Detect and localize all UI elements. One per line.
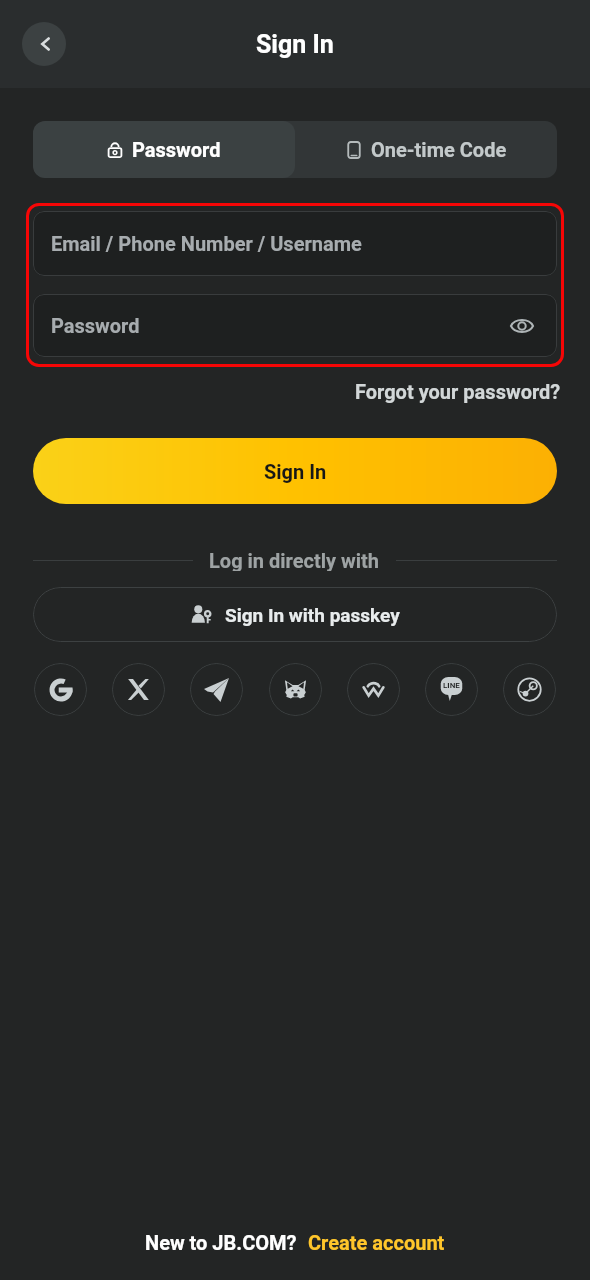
button[interactable]: Create account xyxy=(308,1231,445,1254)
button[interactable]: Forgot your password? xyxy=(353,376,563,407)
button[interactable]: Sign In with passkey xyxy=(33,587,557,642)
button[interactable]: Sign in with Telegram xyxy=(190,663,243,716)
button[interactable]: Password xyxy=(33,294,557,357)
button[interactable]: One-time Code xyxy=(295,121,557,178)
staticText: Create account xyxy=(308,1231,445,1254)
staticText: One-time Code xyxy=(371,138,507,161)
button[interactable]: Sign in with LINE xyxy=(425,663,478,716)
staticText: Sign In with passkey xyxy=(225,604,400,626)
staticText: New to JB.COM? xyxy=(145,1231,297,1254)
button[interactable]: Sign in with Google xyxy=(34,663,87,716)
staticText: Forgot your password? xyxy=(355,380,561,403)
button[interactable]: Sign in with X xyxy=(112,663,165,716)
staticText: Log in directly with xyxy=(209,549,380,571)
staticText: Sign In xyxy=(264,460,327,483)
staticText: Email / Phone Number / Username xyxy=(51,232,362,255)
staticText: Password xyxy=(51,314,140,337)
button[interactable]: Email / Phone Number / Username xyxy=(33,211,557,276)
button[interactable]: Password xyxy=(33,121,295,178)
button[interactable]: Sign in with Steam xyxy=(503,663,556,716)
staticText: LINE xyxy=(443,681,460,690)
staticText: Sign In xyxy=(256,30,334,59)
button[interactable]: Show password xyxy=(500,304,544,348)
button[interactable]: Sign in with WalletConnect xyxy=(347,663,400,716)
button[interactable]: Sign In xyxy=(33,438,557,504)
staticText: Password xyxy=(132,138,221,161)
button[interactable]: Back xyxy=(22,22,66,66)
button[interactable]: Sign in with MetaMask xyxy=(269,663,322,716)
